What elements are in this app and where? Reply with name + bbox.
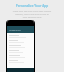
button[interactable] (7, 39, 34, 43)
button[interactable] (7, 54, 34, 58)
button[interactable] (7, 34, 34, 38)
staticText: Personalize Your App (0, 4, 64, 8)
staticText: Appearance (9, 29, 21, 32)
button[interactable] (7, 44, 34, 48)
button[interactable] (7, 59, 34, 63)
button[interactable] (7, 49, 34, 53)
staticText: Make your app truly yours with custom th… (0, 10, 64, 19)
